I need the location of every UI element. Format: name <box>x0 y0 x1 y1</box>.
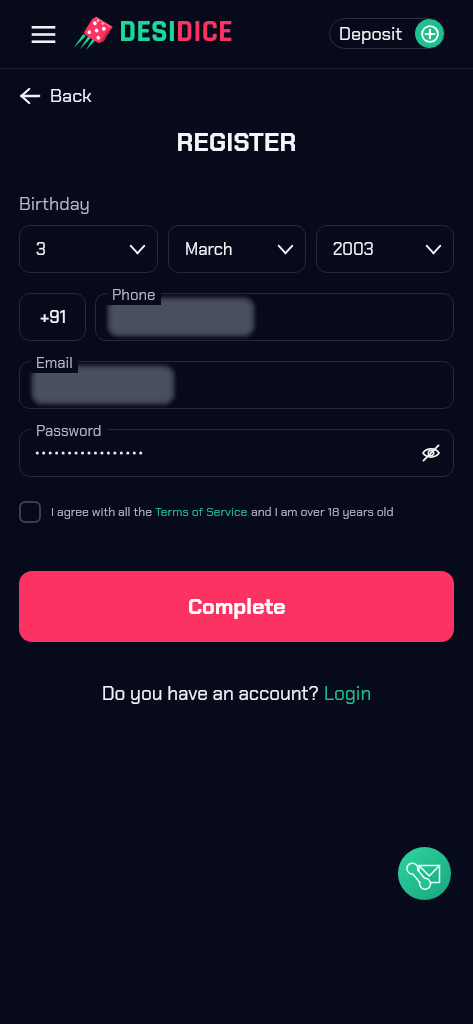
staticText: March <box>185 238 233 260</box>
button[interactable]: Contact support <box>398 847 451 900</box>
staticText: and I am over 18 years old <box>248 504 394 520</box>
staticText: I agree with all the <box>51 504 155 520</box>
button[interactable]: +91 <box>19 293 86 341</box>
button[interactable]: 2003 <box>316 225 454 273</box>
staticText: Terms of Service <box>155 504 248 520</box>
button[interactable]: Complete <box>19 571 454 642</box>
staticText: +91 <box>40 306 66 328</box>
button[interactable]: I agree with all the <box>19 501 454 523</box>
button[interactable] <box>19 361 454 409</box>
button[interactable]: March <box>168 225 306 273</box>
staticText: REGISTER <box>0 126 473 158</box>
staticText: Deposit <box>339 22 403 45</box>
button[interactable]: Login <box>324 681 372 706</box>
staticText: 2003 <box>333 238 374 260</box>
staticText: DESI <box>119 12 176 52</box>
staticText: Phone <box>112 285 156 305</box>
button[interactable]: Show password <box>418 440 444 466</box>
staticText: Password <box>36 421 102 441</box>
button[interactable]: Open menu <box>25 17 62 52</box>
staticText: Complete <box>188 593 286 621</box>
staticText: Birthday <box>19 192 90 215</box>
staticText: Email <box>36 353 73 373</box>
button[interactable]: Back <box>16 81 96 111</box>
staticText: Login <box>324 681 372 706</box>
staticText: DICE <box>176 12 233 52</box>
button[interactable]: 3 <box>19 225 158 273</box>
staticText: 3 <box>36 238 46 260</box>
button[interactable] <box>19 429 454 477</box>
staticText: Back <box>50 84 92 108</box>
staticText: Do you have an account? <box>102 681 324 706</box>
button[interactable]: Deposit <box>329 18 445 49</box>
button[interactable] <box>95 293 454 341</box>
